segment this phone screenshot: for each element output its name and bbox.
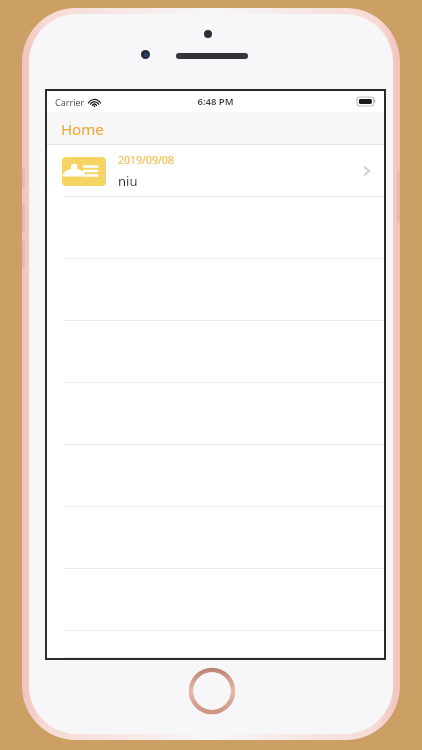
- button[interactable]: 2019/09/08: [47, 145, 384, 197]
- other: Open detail: [362, 163, 372, 179]
- button[interactable]: [47, 631, 384, 658]
- staticText: Carrier: [55, 96, 85, 108]
- staticText: niu: [118, 172, 138, 190]
- staticText: 2019/09/08: [118, 153, 174, 167]
- button[interactable]: Home button: [189, 668, 235, 714]
- staticText: Home: [61, 119, 104, 139]
- button[interactable]: Home: [47, 112, 384, 145]
- staticText: 6:48 PM: [197, 95, 234, 108]
